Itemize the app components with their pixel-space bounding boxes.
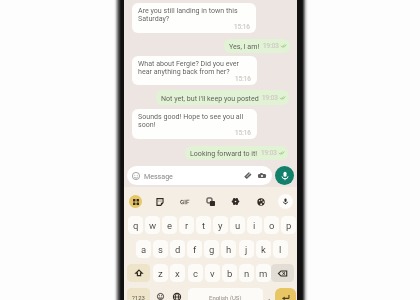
staticText: e bbox=[167, 220, 173, 231]
button[interactable]: Translate bbox=[204, 195, 217, 208]
staticText: soon! bbox=[138, 120, 156, 128]
staticText: n bbox=[244, 268, 250, 279]
button[interactable]: h bbox=[221, 240, 236, 258]
staticText: 15:16 bbox=[234, 23, 250, 31]
staticText: j bbox=[245, 244, 248, 255]
staticText: v bbox=[210, 268, 215, 279]
staticText: 19:03 bbox=[261, 149, 277, 157]
button[interactable]: j bbox=[239, 240, 254, 258]
staticText: d bbox=[175, 244, 181, 255]
staticText: q bbox=[133, 220, 139, 231]
button[interactable]: z bbox=[153, 264, 168, 282]
button[interactable]: Sounds good! Hope to see you all bbox=[132, 109, 257, 139]
button[interactable]: n bbox=[239, 264, 254, 282]
staticText: f bbox=[193, 244, 197, 255]
button[interactable]: x bbox=[170, 264, 185, 282]
staticText: . bbox=[268, 292, 271, 300]
button[interactable]: q bbox=[128, 216, 143, 234]
button[interactable]: What about Fergie? Did you ever bbox=[132, 56, 257, 85]
button[interactable]: English (US) bbox=[188, 288, 263, 300]
button[interactable]: Enter bbox=[275, 288, 296, 300]
staticText: w bbox=[149, 220, 157, 231]
staticText: a bbox=[141, 244, 147, 255]
staticText: i bbox=[253, 220, 256, 231]
staticText: c bbox=[193, 268, 198, 279]
staticText: g bbox=[209, 244, 215, 255]
staticText: o bbox=[269, 220, 275, 231]
staticText: y bbox=[218, 220, 223, 231]
staticText: GIF bbox=[180, 198, 190, 205]
button[interactable]: t bbox=[196, 216, 211, 234]
button[interactable]: b bbox=[222, 264, 237, 282]
staticText: z bbox=[158, 268, 163, 279]
staticText: h bbox=[226, 244, 232, 255]
button[interactable]: f bbox=[187, 240, 202, 258]
button[interactable]: k bbox=[256, 240, 271, 258]
staticText: Sounds good! Hope to see you all bbox=[138, 112, 244, 120]
staticText: Yes, I am! bbox=[229, 42, 260, 50]
staticText: hear anything back from her? bbox=[138, 67, 230, 75]
staticText: l bbox=[279, 244, 282, 255]
button[interactable]: Backspace bbox=[271, 264, 294, 282]
button[interactable]: Shift bbox=[127, 264, 150, 282]
button[interactable]: Period bbox=[265, 288, 274, 300]
button[interactable]: Are you still landing in town this bbox=[132, 3, 256, 33]
button[interactable]: w bbox=[145, 216, 160, 234]
button[interactable]: c bbox=[188, 264, 203, 282]
button[interactable]: ?123 bbox=[127, 288, 150, 300]
staticText: Are you still landing in town this bbox=[138, 6, 238, 14]
button[interactable]: Voice typing bbox=[278, 194, 293, 209]
button[interactable]: o bbox=[264, 216, 279, 234]
staticText: ?123 bbox=[132, 294, 145, 300]
staticText: p bbox=[286, 220, 292, 231]
staticText: m bbox=[259, 268, 268, 279]
staticText: Message bbox=[144, 172, 173, 180]
button[interactable]: Emoji bbox=[155, 291, 166, 300]
staticText: u bbox=[235, 220, 241, 231]
button[interactable]: u bbox=[230, 216, 245, 234]
button[interactable]: l bbox=[273, 240, 288, 258]
staticText: Not yet, but I'll keep you posted bbox=[161, 94, 259, 102]
staticText: 15:16 bbox=[235, 129, 251, 137]
staticText: 15:16 bbox=[235, 75, 251, 83]
staticText: 19:03 bbox=[262, 94, 278, 102]
button[interactable]: m bbox=[256, 264, 271, 282]
staticText: 19:03 bbox=[263, 42, 279, 50]
button[interactable]: g bbox=[204, 240, 219, 258]
staticText: x bbox=[175, 268, 180, 279]
button[interactable]: e bbox=[162, 216, 177, 234]
button[interactable]: s bbox=[153, 240, 168, 258]
button[interactable]: Settings bbox=[229, 195, 242, 208]
button[interactable]: a bbox=[136, 240, 151, 258]
button[interactable]: v bbox=[205, 264, 220, 282]
staticText: b bbox=[227, 268, 233, 279]
button[interactable]: i bbox=[247, 216, 262, 234]
button[interactable]: Not yet, but I'll keep you posted bbox=[156, 90, 289, 105]
button[interactable]: y bbox=[213, 216, 228, 234]
button[interactable]: Yes, I am! bbox=[224, 39, 290, 53]
button[interactable]: Message bbox=[127, 166, 272, 185]
staticText: What about Fergie? Did you ever bbox=[138, 59, 239, 67]
button[interactable]: Looking forward to it! bbox=[185, 146, 288, 160]
staticText: t bbox=[202, 220, 206, 231]
staticText: English (US) bbox=[209, 294, 242, 300]
staticText: Looking forward to it! bbox=[190, 149, 258, 157]
button[interactable]: Keyboard menu bbox=[129, 195, 142, 208]
button[interactable]: Change keyboard bbox=[171, 291, 182, 300]
button[interactable]: d bbox=[170, 240, 185, 258]
staticText: r bbox=[185, 220, 189, 231]
button[interactable]: Stickers bbox=[153, 195, 166, 208]
button[interactable]: Record voice message bbox=[275, 166, 294, 185]
button[interactable]: r bbox=[179, 216, 194, 234]
staticText: k bbox=[261, 244, 266, 255]
button[interactable]: p bbox=[281, 216, 296, 234]
button[interactable]: GIF bbox=[177, 197, 193, 206]
staticText: s bbox=[158, 244, 163, 255]
staticText: Saturday? bbox=[138, 14, 170, 22]
button[interactable]: Theme bbox=[254, 195, 267, 208]
